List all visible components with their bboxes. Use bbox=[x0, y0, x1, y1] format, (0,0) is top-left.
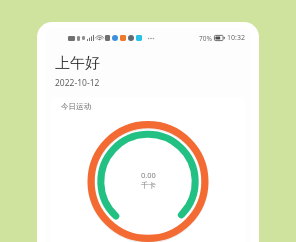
staticText: 70% bbox=[199, 34, 212, 43]
staticText: 0.00 bbox=[141, 170, 156, 180]
staticText: 今日运动 bbox=[61, 102, 91, 111]
button[interactable]: 今日运动 0.00 千卡 bbox=[87, 121, 209, 242]
staticText: 千卡 bbox=[141, 181, 156, 190]
button[interactable]: 今日运动 bbox=[51, 97, 245, 242]
staticText: 上午好 bbox=[55, 54, 100, 73]
staticText: 2022-10-12 bbox=[55, 77, 100, 89]
staticText: 10:32 bbox=[227, 33, 245, 43]
